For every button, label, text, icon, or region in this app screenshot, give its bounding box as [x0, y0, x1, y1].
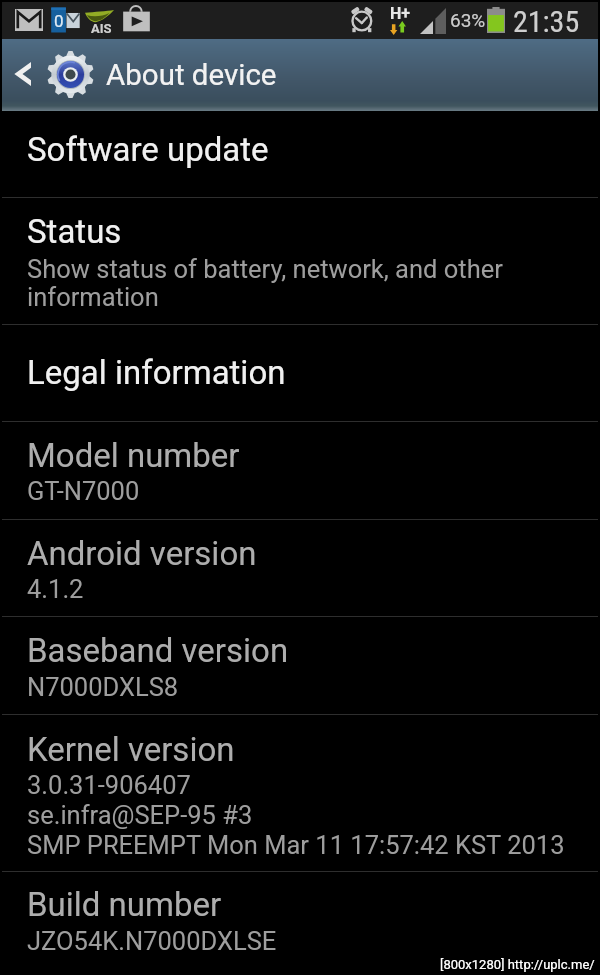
staticText: Model number: [27, 436, 240, 475]
button[interactable]: Model number: [0, 422, 600, 520]
staticText: 3.0.31-906407: [27, 770, 191, 800]
staticText: Android version: [27, 534, 257, 573]
staticText: Software update: [27, 130, 269, 169]
staticText: Build number: [27, 885, 222, 924]
staticText: Show status of battery, network, and oth…: [27, 254, 503, 284]
staticText: 4.1.2: [27, 574, 84, 604]
staticText: information: [27, 282, 159, 312]
button[interactable]: Software update: [0, 111, 600, 198]
staticText: 63%: [450, 9, 486, 31]
staticText: H+: [390, 4, 411, 23]
staticText: Baseband version: [27, 631, 289, 670]
staticText: GT-N7000: [27, 476, 140, 506]
staticText: Kernel version: [27, 730, 235, 769]
staticText: AIS: [91, 21, 112, 36]
button[interactable]: Navigate up: [0, 39, 100, 111]
staticText: N7000DXLS8: [27, 672, 179, 702]
button[interactable]: About device: [100, 39, 600, 111]
staticText: About device: [106, 58, 277, 93]
button[interactable]: Baseband version: [0, 617, 600, 715]
staticText: 0: [54, 11, 64, 31]
staticText: Legal information: [27, 353, 286, 392]
staticText: se.infra@SEP-95 #3: [27, 800, 253, 830]
button[interactable]: Build number: [0, 872, 600, 975]
button[interactable]: Android version: [0, 520, 600, 617]
staticText: [800x1280] http://uplc.me/: [440, 957, 595, 972]
button[interactable]: Kernel version: [0, 715, 600, 872]
staticText: 21:35: [513, 4, 580, 39]
staticText: JZO54K.N7000DXLSE: [27, 926, 277, 956]
button[interactable]: Legal information: [0, 325, 600, 422]
button[interactable]: Status: [0, 198, 600, 325]
staticText: Status: [27, 212, 122, 251]
staticText: SMP PREEMPT Mon Mar 11 17:57:42 KST 2013: [27, 830, 565, 860]
